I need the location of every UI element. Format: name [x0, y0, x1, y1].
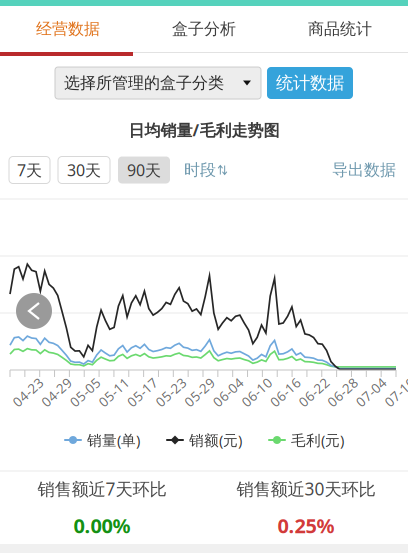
- staticText: 盒子分析: [172, 19, 236, 39]
- staticText: 06-22: [296, 383, 332, 401]
- staticText: 销额(元): [189, 430, 242, 450]
- staticText: 06-16: [267, 383, 303, 401]
- staticText: 05-17: [124, 383, 160, 401]
- staticText: 日均销量/毛利走势图: [128, 119, 279, 141]
- staticText: 7天: [17, 159, 42, 181]
- staticText: 05-23: [153, 383, 189, 401]
- button[interactable]: 经营数据: [0, 6, 136, 52]
- button[interactable]: 盒子分析: [136, 6, 272, 52]
- button[interactable]: 导出数据: [332, 160, 396, 180]
- button[interactable]: 选择所管理的盒子分类: [55, 67, 261, 99]
- staticText: 04-29: [39, 383, 75, 401]
- button[interactable]: 7天: [9, 156, 50, 183]
- staticText: 导出数据: [332, 160, 396, 180]
- button[interactable]: 统计数据: [267, 67, 353, 99]
- staticText: 04-23: [10, 383, 46, 401]
- button[interactable]: 30天: [58, 156, 110, 183]
- staticText: 06-04: [210, 383, 246, 401]
- staticText: 0.25%: [277, 512, 334, 539]
- staticText: 05-11: [96, 383, 132, 401]
- staticText: 毛利(元): [291, 430, 344, 450]
- staticText: 30天: [67, 159, 101, 181]
- staticText: 07-10: [382, 383, 408, 401]
- staticText: 统计数据: [276, 72, 344, 94]
- staticText: 90天: [127, 159, 161, 181]
- staticText: 05-05: [67, 383, 103, 401]
- button[interactable]: 90天: [118, 156, 170, 183]
- staticText: 销量(单): [87, 430, 140, 450]
- staticText: 0.00%: [73, 512, 130, 539]
- staticText: 销售额近7天环比: [37, 477, 166, 500]
- staticText: 经营数据: [36, 19, 100, 39]
- button[interactable]: 商品统计: [272, 6, 408, 52]
- staticText: 时段: [184, 160, 216, 180]
- staticText: 06-28: [325, 383, 361, 401]
- staticText: 07-04: [353, 383, 389, 401]
- staticText: 选择所管理的盒子分类: [64, 73, 224, 93]
- staticText: 06-10: [239, 383, 275, 401]
- staticText: 商品统计: [308, 19, 372, 39]
- staticText: 销售额近30天环比: [236, 477, 375, 500]
- button[interactable]: 时段: [184, 160, 227, 180]
- staticText: 05-29: [182, 383, 218, 401]
